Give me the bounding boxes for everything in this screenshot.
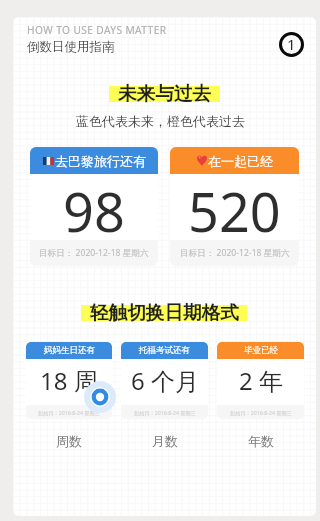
staticText: 2 年 — [239, 364, 283, 397]
staticText: HOW TO USE DAYS MATTER — [27, 23, 167, 37]
staticText: 未来与过去 — [118, 82, 211, 105]
staticText: 在一起已经 — [208, 153, 273, 169]
staticText: 18 周 — [40, 364, 98, 397]
staticText: 蓝色代表未来，橙色代表过去 — [76, 113, 245, 129]
staticText: 目标日： 2020-12-18 星期六 — [180, 247, 290, 259]
staticText: 妈妈生日还有 — [44, 345, 95, 356]
button[interactable]: 在一起已经 — [170, 147, 299, 266]
staticText: 6 个月 — [131, 364, 199, 397]
staticText: 月数 — [152, 433, 178, 449]
staticText: 起始日：2016-8-24 星期三 — [134, 409, 196, 416]
staticText: 起始日：2016-8-24 星期三 — [38, 409, 100, 416]
staticText: 毕业已经 — [244, 345, 278, 356]
button[interactable]: 周数 — [26, 428, 112, 454]
button[interactable]: 妈妈生日还有 — [26, 342, 112, 419]
staticText: 目标日： 2020-12-18 星期六 — [39, 247, 149, 259]
staticText: 1 — [287, 34, 296, 54]
staticText: 起始日：2016-8-24 星期三 — [230, 409, 292, 416]
staticText: 98 — [63, 174, 125, 240]
staticText: 520 — [188, 174, 281, 240]
button[interactable]: 毕业已经 — [217, 342, 304, 419]
staticText: 倒数日使用指南 — [27, 39, 115, 55]
button[interactable]: 托福考试还有 — [121, 342, 208, 419]
button[interactable]: Step 1 — [271, 24, 311, 64]
button[interactable]: 去巴黎旅行还有 — [30, 147, 158, 266]
staticText: 轻触切换日期格式 — [90, 301, 239, 324]
button[interactable]: 年数 — [217, 428, 304, 454]
staticText: 年数 — [248, 433, 274, 449]
staticText: 托福考试还有 — [139, 345, 190, 356]
button[interactable]: 月数 — [121, 428, 208, 454]
staticText: 周数 — [56, 433, 82, 449]
staticText: 去巴黎旅行还有 — [55, 153, 146, 169]
